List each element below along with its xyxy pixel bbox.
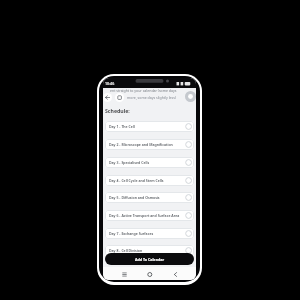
- staticText: more, some days slightly less): [127, 95, 176, 100]
- staticText: ent straight to your calendar (some days: [110, 88, 177, 93]
- button[interactable]: Add To Calendar: [105, 253, 194, 265]
- staticText: Day 1 - The Cell: [109, 124, 135, 129]
- staticText: Day 2 - Microscope and Magnification: [109, 142, 173, 147]
- button[interactable]: Day 4 - Cell Cycle and Stem Cells: [105, 175, 194, 186]
- staticText: Schedule:: [105, 107, 130, 114]
- button[interactable]: Day 1 - The Cell: [105, 121, 194, 132]
- button[interactable]: Day 2 - Microscope and Magnification: [105, 139, 194, 150]
- button[interactable]: Day 8 - Cell Division: [105, 245, 194, 256]
- staticText: 10:46: [105, 81, 115, 86]
- staticText: Day 6 - Active Transport and Surface Are…: [109, 213, 180, 218]
- staticText: Day 7 - Exchange Surfaces: [109, 231, 154, 236]
- staticText: Day 3 - Specialised Cells: [109, 160, 150, 165]
- button[interactable]: Day 5 - Diffusion and Osmosis: [105, 192, 194, 203]
- staticText: Day 8 - Cell Division: [109, 248, 143, 253]
- button[interactable]: [115, 93, 124, 102]
- button[interactable]: Day 7 - Exchange Surfaces: [105, 228, 194, 239]
- button[interactable]: [103, 93, 112, 102]
- staticText: Day 5 - Diffusion and Osmosis: [109, 195, 160, 200]
- button[interactable]: [185, 91, 196, 102]
- button[interactable]: Day 3 - Specialised Cells: [105, 157, 194, 168]
- staticText: Day 4 - Cell Cycle and Stem Cells: [109, 178, 164, 183]
- staticText: Add To Calendar: [135, 257, 165, 262]
- button[interactable]: Day 6 - Active Transport and Surface Are…: [105, 210, 194, 221]
